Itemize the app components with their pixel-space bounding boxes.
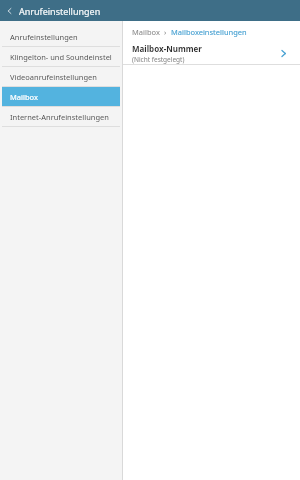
staticText: Mailbox-Nummer	[132, 43, 202, 54]
staticText: Anrufeinstellungen	[19, 5, 101, 17]
staticText: Mailbox	[132, 27, 160, 37]
staticText: Mailboxeinstellungen	[171, 27, 247, 37]
staticText: Videoanrufeinstellungen	[10, 72, 97, 82]
staticText: (Nicht festgelegt)	[132, 55, 185, 64]
button[interactable]: Klingelton- und Soundeinstel	[2, 47, 120, 66]
staticText: Anrufeinstellungen	[10, 32, 78, 42]
staticText: Mailbox	[10, 92, 38, 102]
staticText: Klingelton- und Soundeinstel	[10, 52, 112, 62]
button[interactable]: Mailbox	[2, 87, 120, 106]
button[interactable]: Anrufeinstellungen	[2, 27, 120, 46]
staticText: Internet-Anrufeinstellungen	[10, 112, 109, 122]
button[interactable]: Mailbox-Nummer	[123, 42, 300, 64]
staticText: ›	[160, 27, 171, 37]
button[interactable]: Videoanrufeinstellungen	[2, 67, 120, 86]
button[interactable]: Back	[3, 4, 17, 18]
button[interactable]: Internet-Anrufeinstellungen	[2, 107, 120, 126]
